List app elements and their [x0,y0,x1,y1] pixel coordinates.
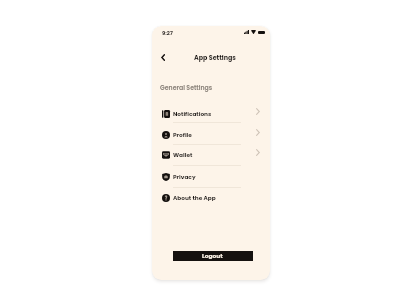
staticText: About the App [173,194,216,202]
button[interactable]: Wallet [152,144,270,165]
staticText: App Settings [194,53,236,62]
button[interactable]: Notifications [152,103,270,124]
button[interactable]: Profile [152,124,270,145]
staticText: Profile [173,131,192,139]
button[interactable]: Privacy [152,166,270,187]
staticText: Logout [202,252,223,260]
staticText: Privacy [173,173,196,181]
staticText: Wallet [173,151,193,159]
button[interactable]: Logout [173,251,253,261]
staticText: General Settings [160,83,213,92]
button[interactable]: About the App [152,187,270,208]
staticText: Notifications [173,110,212,118]
button[interactable]: Back [157,51,169,63]
staticText: 9:27 [162,29,173,37]
